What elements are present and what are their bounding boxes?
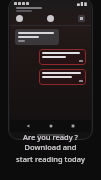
button[interactable]: Contact <box>47 15 54 22</box>
button[interactable] <box>15 29 59 45</box>
button[interactable]: Recents <box>68 121 78 131</box>
button[interactable]: Home <box>46 121 56 131</box>
staticText: start reading today <box>16 154 85 164</box>
button[interactable]: More options <box>78 15 85 22</box>
button[interactable] <box>39 69 86 85</box>
button[interactable]: Contact <box>16 15 23 22</box>
staticText: Are you ready ? Download and <box>6 132 95 152</box>
button[interactable] <box>39 49 86 65</box>
button[interactable]: Back <box>23 121 33 131</box>
